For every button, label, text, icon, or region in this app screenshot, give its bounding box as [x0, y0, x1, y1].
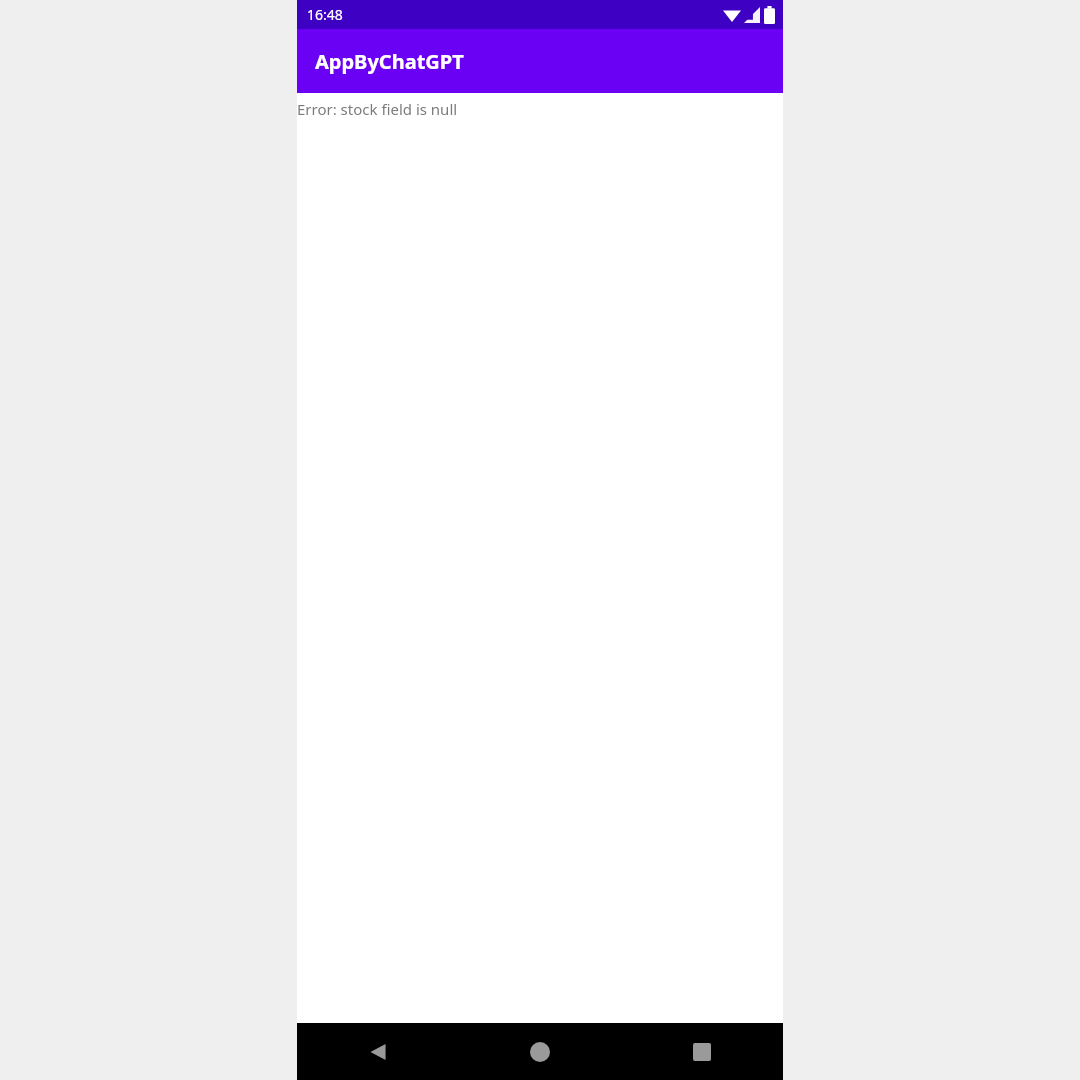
- button[interactable]: Recent apps: [621, 1023, 783, 1080]
- button[interactable]: Home: [459, 1023, 621, 1080]
- staticText: Error: stock field is null: [297, 99, 458, 119]
- button[interactable]: AppByChatGPT: [297, 29, 783, 93]
- button[interactable]: Back: [297, 1023, 459, 1080]
- staticText: 16:48: [307, 5, 343, 24]
- staticText: AppByChatGPT: [315, 48, 464, 75]
